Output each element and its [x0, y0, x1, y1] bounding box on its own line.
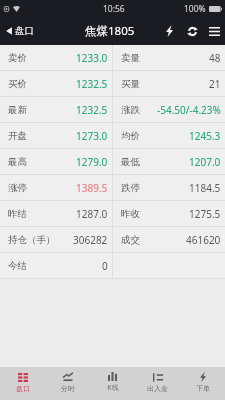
staticText: 均价: [121, 130, 140, 142]
staticText: 0: [102, 259, 108, 273]
staticText: 1233.0: [76, 51, 108, 65]
staticText: 出入金: [147, 384, 168, 393]
staticText: 21: [209, 77, 221, 91]
staticText: 盘口: [16, 384, 30, 393]
staticText: 100%: [184, 3, 206, 15]
button[interactable]: 出入金: [135, 367, 180, 400]
staticText: 1245.3: [189, 129, 221, 143]
staticText: 卖价: [8, 52, 27, 64]
button[interactable]: K线: [90, 367, 135, 400]
button[interactable]: 分时: [45, 367, 90, 400]
staticText: 48: [209, 51, 221, 65]
staticText: 1389.5: [76, 181, 108, 195]
button[interactable]: 下单: [180, 367, 225, 400]
staticText: 成交: [121, 234, 140, 246]
staticText: 10:56: [103, 3, 125, 15]
staticText: 1279.0: [76, 155, 108, 169]
staticText: 跌停: [121, 182, 140, 194]
button[interactable]: 盘口: [0, 367, 45, 400]
button[interactable]: 菜单: [204, 17, 225, 45]
staticText: 分时: [61, 384, 75, 393]
staticText: 持仓（手）: [8, 234, 56, 246]
staticText: -54.50/-4.23%: [157, 103, 221, 117]
staticText: 涨停: [8, 182, 27, 194]
button[interactable]: 刷新: [181, 17, 204, 45]
staticText: K线: [107, 383, 119, 393]
staticText: 昨结: [8, 208, 27, 220]
staticText: 下单: [196, 384, 210, 393]
staticText: 盘口: [15, 25, 34, 37]
staticText: 461620: [186, 233, 221, 247]
button[interactable]: 盘口: [0, 17, 42, 45]
staticText: 卖量: [121, 52, 140, 64]
staticText: 最高: [8, 156, 27, 168]
staticText: 1232.5: [76, 103, 108, 117]
staticText: 最低: [121, 156, 140, 168]
staticText: 1232.5: [76, 77, 108, 91]
staticText: 今结: [8, 260, 27, 272]
staticText: 买价: [8, 78, 27, 90]
staticText: 1273.0: [76, 129, 108, 143]
staticText: 开盘: [8, 130, 27, 142]
staticText: 1184.5: [189, 181, 221, 195]
button[interactable]: 下单: [158, 17, 181, 45]
staticText: 昨收: [121, 208, 140, 220]
staticText: 1207.0: [189, 155, 221, 169]
staticText: 306282: [73, 233, 108, 247]
staticText: 1287.0: [76, 207, 108, 221]
staticText: 1275.5: [189, 207, 221, 221]
staticText: 买量: [121, 78, 140, 90]
staticText: 涨跌: [121, 104, 140, 116]
staticText: 最新: [8, 104, 27, 116]
staticText: 焦煤1805: [85, 23, 135, 39]
